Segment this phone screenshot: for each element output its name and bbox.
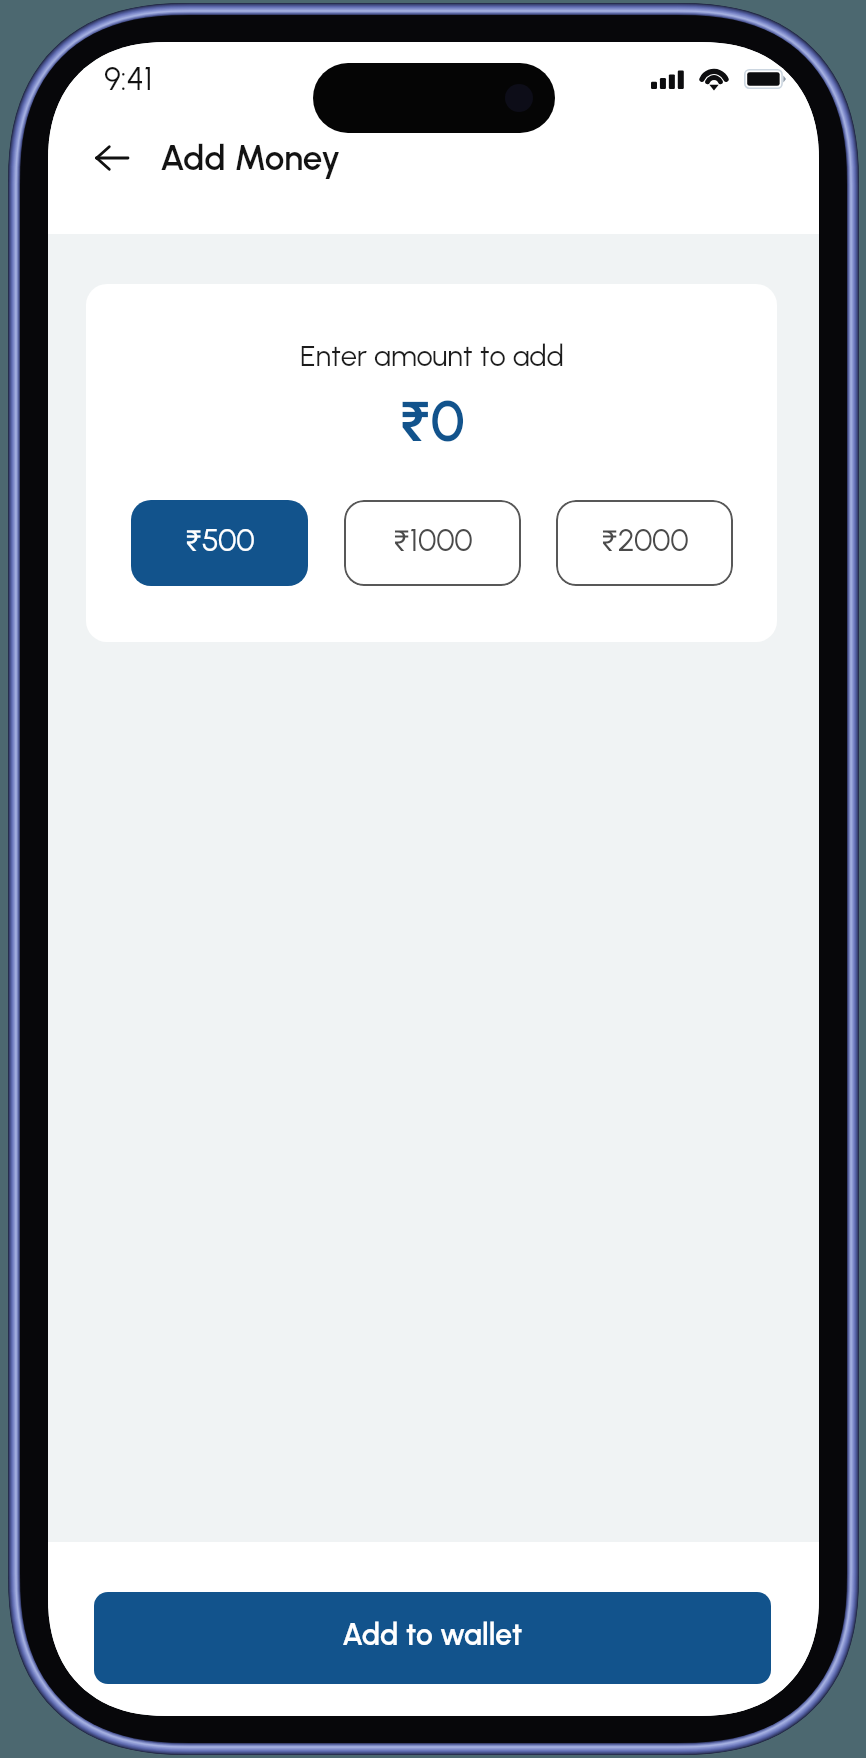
staticText: Add Money xyxy=(160,137,341,179)
staticText: ₹1000 xyxy=(393,518,473,568)
button[interactable]: Back xyxy=(80,126,144,190)
staticText: 9:41 xyxy=(104,60,153,98)
staticText: ₹2000 xyxy=(601,518,689,568)
button[interactable]: Add to wallet xyxy=(94,1592,771,1684)
staticText: ₹500 xyxy=(185,518,255,568)
staticText: Enter amount to add xyxy=(300,338,564,373)
staticText: Add to wallet xyxy=(342,1616,523,1652)
button[interactable]: ₹1000 xyxy=(344,500,521,586)
staticText: ₹0 xyxy=(399,381,465,472)
button[interactable]: ₹500 xyxy=(131,500,308,586)
button[interactable]: ₹2000 xyxy=(556,500,733,586)
